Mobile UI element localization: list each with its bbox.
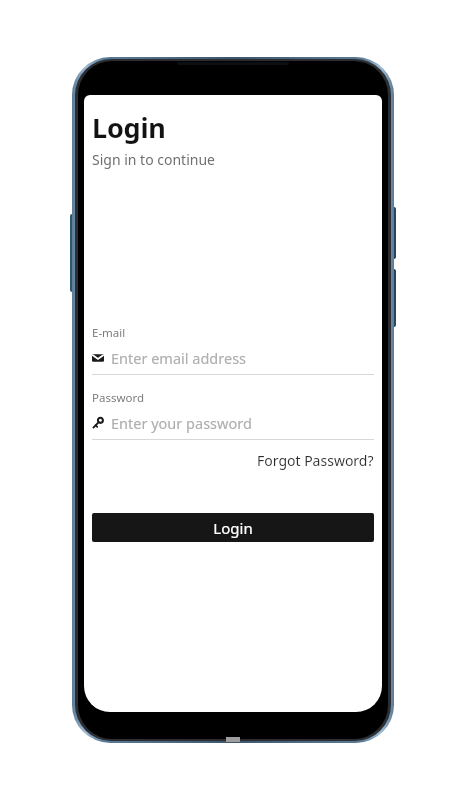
- staticText: Enter your password: [111, 413, 252, 433]
- other: Email: [92, 352, 104, 364]
- button[interactable]: Forgot Password?: [257, 449, 382, 472]
- staticText: Password: [92, 390, 145, 406]
- button[interactable]: Email: [92, 348, 374, 368]
- staticText: Forgot Password?: [257, 451, 374, 470]
- staticText: Login: [92, 109, 166, 146]
- other: Password: [92, 417, 104, 429]
- staticText: Login: [213, 518, 253, 538]
- staticText: Enter email address: [111, 348, 247, 368]
- staticText: Sign in to continue: [92, 150, 215, 169]
- button[interactable]: Login: [92, 513, 374, 542]
- staticText: E-mail: [92, 325, 126, 341]
- button[interactable]: Password: [92, 413, 374, 433]
